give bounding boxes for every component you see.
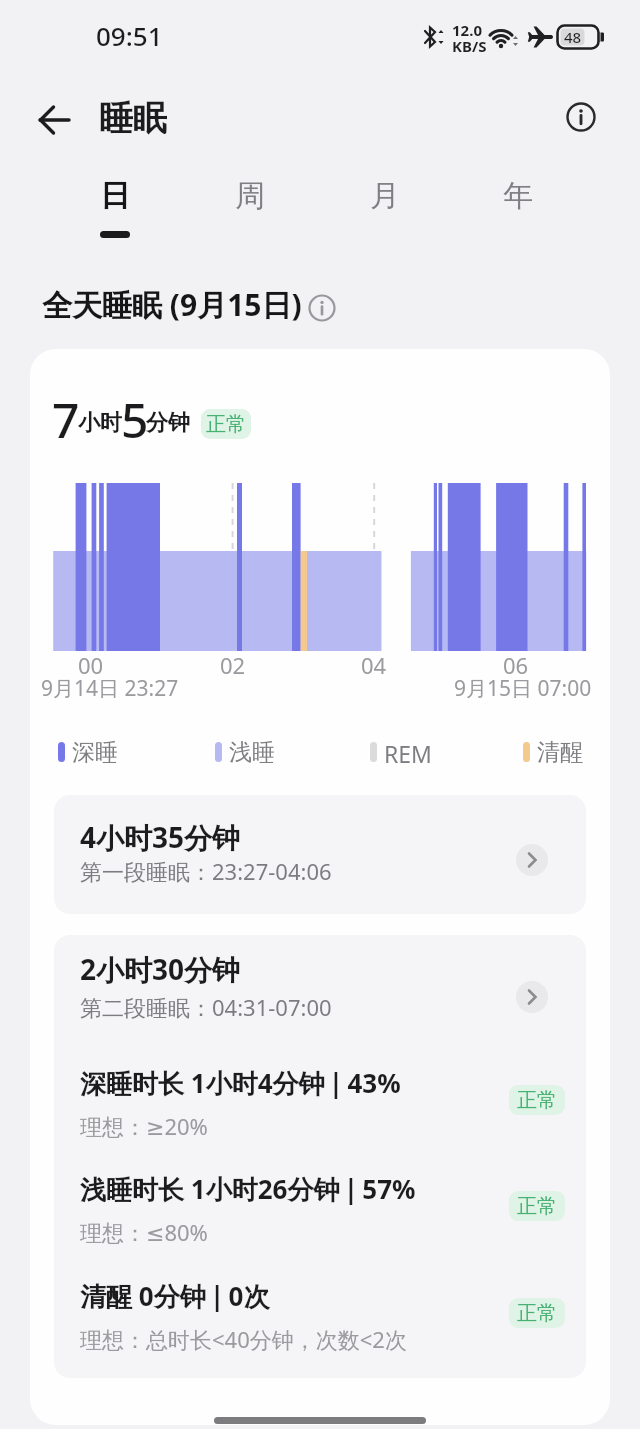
staticText: 浅睡 bbox=[229, 738, 275, 767]
staticText: 睡眠 bbox=[99, 97, 167, 140]
staticText: 06 bbox=[503, 650, 529, 680]
button[interactable] bbox=[38, 103, 72, 137]
button[interactable]: 月 bbox=[352, 170, 418, 242]
staticText: 深睡时长 1小时4分钟 | 43% bbox=[80, 1065, 401, 1101]
staticText: 正常 bbox=[517, 1088, 557, 1113]
staticText: 理想：≥20% bbox=[80, 1111, 208, 1141]
staticText: 全天睡眠 (9月15日) bbox=[42, 284, 302, 325]
staticText: 正常 bbox=[517, 1194, 557, 1219]
staticText: 9月14日 23:27 bbox=[41, 674, 179, 703]
staticText: 5 bbox=[121, 387, 149, 452]
staticText: 00 bbox=[78, 650, 104, 680]
staticText: 9月15日 07:00 bbox=[454, 674, 592, 703]
staticText: 第一段睡眠：23:27-04:06 bbox=[80, 856, 332, 886]
staticText: 12.0 bbox=[452, 20, 482, 40]
button[interactable] bbox=[306, 292, 338, 324]
staticText: 深睡 bbox=[72, 738, 118, 767]
staticText: 正常 bbox=[206, 412, 246, 437]
staticText: 7 bbox=[52, 387, 80, 452]
staticText: 清醒 0分钟 | 0次 bbox=[80, 1278, 270, 1314]
staticText: REM bbox=[384, 738, 432, 769]
button[interactable] bbox=[54, 795, 586, 914]
button[interactable] bbox=[54, 935, 586, 1378]
button[interactable]: 日 bbox=[82, 170, 148, 242]
staticText: 04 bbox=[361, 650, 387, 680]
button[interactable] bbox=[565, 101, 597, 133]
button[interactable]: 周 bbox=[217, 170, 283, 242]
staticText: 分钟 bbox=[146, 409, 190, 437]
button[interactable]: 年 bbox=[485, 170, 551, 242]
staticText: 09:51 bbox=[96, 18, 163, 53]
staticText: 小时 bbox=[78, 409, 122, 437]
staticText: 日 bbox=[100, 177, 130, 215]
staticText: 理想：≤80% bbox=[80, 1217, 208, 1247]
staticText: 周 bbox=[235, 177, 265, 215]
staticText: 4小时35分钟 bbox=[80, 818, 241, 856]
staticText: 浅睡时长 1小时26分钟 | 57% bbox=[80, 1171, 416, 1207]
staticText: 清醒 bbox=[537, 738, 583, 767]
staticText: 48 bbox=[564, 27, 582, 47]
staticText: 理想：总时长<40分钟，次数<2次 bbox=[80, 1324, 407, 1354]
staticText: 2小时30分钟 bbox=[80, 950, 241, 988]
staticText: 月 bbox=[370, 177, 400, 215]
staticText: 02 bbox=[220, 650, 246, 680]
staticText: KB/S bbox=[452, 36, 487, 56]
staticText: 正常 bbox=[517, 1301, 557, 1326]
staticText: 第二段睡眠：04:31-07:00 bbox=[80, 992, 332, 1022]
staticText: 年 bbox=[503, 177, 533, 215]
